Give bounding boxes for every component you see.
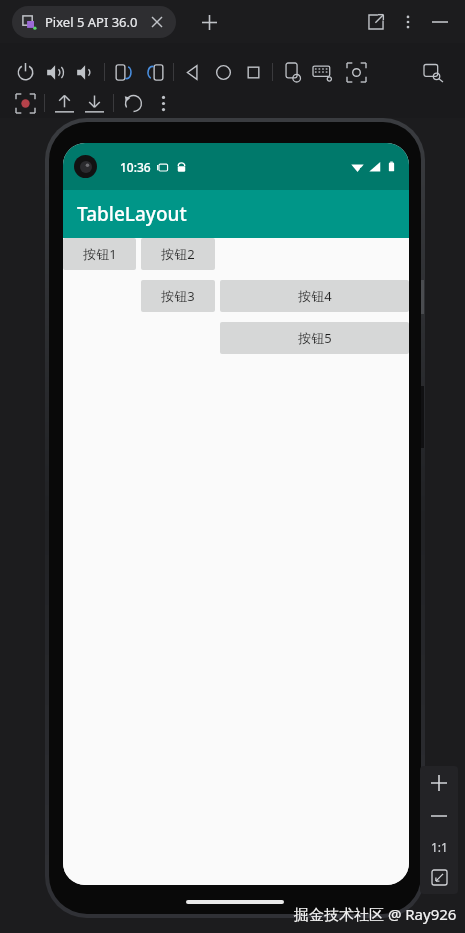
button[interactable]: 按钮5 <box>220 322 409 354</box>
staticText: 按钮4 <box>298 287 332 305</box>
button[interactable]: More <box>148 88 178 118</box>
button[interactable]: Pixel 5 API 36.0 <box>12 6 176 38</box>
staticText: 按钮2 <box>161 245 195 263</box>
button[interactable]: Minimize <box>427 9 453 35</box>
button[interactable]: New tab <box>196 9 222 35</box>
button[interactable]: Close tab <box>148 13 166 31</box>
staticText: 掘金技术社区 @ Ray926 <box>294 904 457 924</box>
button[interactable]: Device settings <box>277 57 307 87</box>
button[interactable]: Upload <box>49 88 79 118</box>
button[interactable]: Back <box>178 57 208 87</box>
button[interactable]: Actual size <box>420 832 458 862</box>
button[interactable]: Download <box>79 88 109 118</box>
staticText: 1:1 <box>431 839 448 855</box>
button[interactable]: Volume down <box>70 57 100 87</box>
button[interactable]: 按钮3 <box>141 280 215 312</box>
button[interactable]: Keyboard <box>307 57 337 87</box>
staticText: 按钮5 <box>298 329 332 347</box>
staticText: 按钮3 <box>161 287 195 305</box>
button[interactable]: Inspect <box>418 57 448 87</box>
button[interactable]: Pop out <box>363 9 389 35</box>
staticText: 按钮1 <box>83 245 117 263</box>
button[interactable]: Volume up <box>40 57 70 87</box>
button[interactable]: Zoom out <box>420 800 458 832</box>
button[interactable]: 按钮1 <box>63 238 136 270</box>
staticText: Pixel 5 API 36.0 <box>45 13 138 31</box>
staticText: TableLayout <box>77 201 187 227</box>
button[interactable]: Recents <box>238 57 268 87</box>
button[interactable]: Record <box>10 88 40 118</box>
button[interactable]: 按钮2 <box>141 238 215 270</box>
button[interactable]: Home <box>208 57 238 87</box>
button[interactable]: More options <box>395 9 421 35</box>
button[interactable]: Rotate right <box>139 57 169 87</box>
button[interactable]: Power <box>10 57 40 87</box>
button[interactable]: Rotate left <box>109 57 139 87</box>
button[interactable]: History <box>118 88 148 118</box>
button[interactable]: 按钮4 <box>220 280 409 312</box>
staticText: 10:36 <box>120 159 151 175</box>
button[interactable]: Fit to window <box>420 862 458 892</box>
button[interactable]: Screenshot <box>341 57 371 87</box>
button[interactable]: Zoom in <box>420 766 458 800</box>
